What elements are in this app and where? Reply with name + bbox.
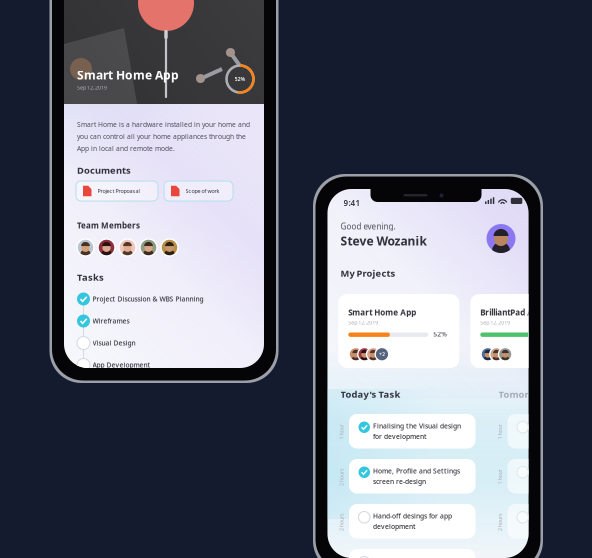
staticText: Visual Design <box>92 339 135 347</box>
staticText: BrilliantPad A <box>480 307 533 318</box>
staticText: Scope of work <box>185 187 219 195</box>
button[interactable]: Visual Design <box>77 336 253 350</box>
button[interactable]: Project Propoasal <box>76 181 158 201</box>
button[interactable] <box>349 549 475 558</box>
button[interactable] <box>507 459 592 493</box>
staticText: Documents <box>77 164 131 176</box>
button[interactable]: Smart Home App <box>338 294 459 368</box>
button[interactable]: BrilliantPad A <box>470 294 591 368</box>
staticText: Tomor <box>498 388 528 400</box>
staticText: Smart Home App <box>77 67 179 83</box>
button[interactable]: Home, Profile and Settings <box>349 459 475 493</box>
button[interactable]: Scope of work <box>164 181 233 201</box>
staticText: Home, Profile and Settings <box>373 466 460 475</box>
staticText: Tasks <box>77 271 104 283</box>
staticText: 2 hours <box>332 518 350 526</box>
button[interactable]: Finalising the Visual design <box>349 414 475 448</box>
staticText: Today's Task <box>340 388 400 400</box>
staticText: Good evening. <box>340 221 395 232</box>
staticText: 2 hours <box>332 473 350 481</box>
staticText: you can control all your home appliances… <box>77 132 246 141</box>
staticText: Wireframes <box>92 317 129 325</box>
staticText: 1 hour <box>492 473 507 481</box>
staticText: Sep 12, 2019 <box>348 319 378 326</box>
staticText: 1 hour <box>334 428 349 436</box>
button[interactable] <box>507 504 592 538</box>
button[interactable]: Project Discussion & WBS Planning <box>77 292 253 306</box>
staticText: App in local and remote mode. <box>77 144 175 153</box>
staticText: App Development <box>92 361 150 369</box>
button[interactable]: App Development <box>77 358 253 372</box>
staticText: 2 hours <box>491 518 509 526</box>
staticText: Team Members <box>77 220 140 231</box>
staticText: development <box>373 522 416 531</box>
button[interactable]: Profile <box>486 224 515 253</box>
staticText: 52% <box>234 75 245 83</box>
button[interactable]: Wireframes <box>77 314 253 328</box>
staticText: Smart Home is a hardware installed in yo… <box>77 120 250 129</box>
staticText: 52% <box>433 329 447 338</box>
staticText: Project Discussion & WBS Planning <box>92 295 203 303</box>
staticText: 1 hour <box>492 428 507 436</box>
staticText: Smart Home App <box>348 307 416 318</box>
staticText: Hand-off desings for app <box>373 511 452 520</box>
staticText: for development <box>373 432 427 441</box>
button[interactable]: Hand-off desings for app <box>349 504 475 538</box>
button[interactable] <box>507 414 592 448</box>
staticText: Finalising the Visual design <box>373 421 461 430</box>
staticText: screen re-design <box>373 477 426 486</box>
staticText: My Projects <box>340 267 395 279</box>
staticText: Project Propoasal <box>97 187 139 195</box>
staticText: Sep 12, 2019 <box>480 319 510 326</box>
staticText: Steve Wozanik <box>340 233 426 249</box>
staticText: 9:41 <box>343 197 360 208</box>
staticText: Sep 12, 2019 <box>77 84 107 91</box>
staticText: +2 <box>379 351 385 358</box>
